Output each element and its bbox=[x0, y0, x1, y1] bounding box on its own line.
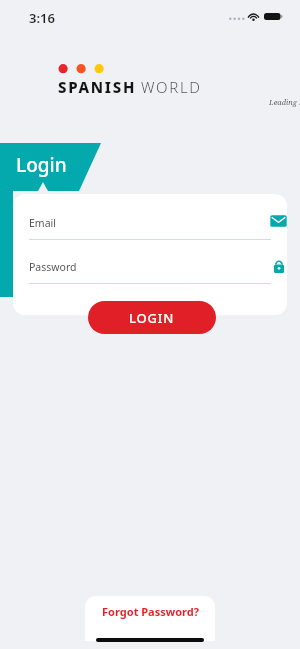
staticText: Login bbox=[16, 152, 67, 178]
button[interactable]: Password bbox=[13, 255, 287, 289]
button[interactable]: Forgot Password? bbox=[85, 596, 215, 641]
staticText: LOGIN bbox=[129, 309, 175, 327]
staticText: Forgot Password? bbox=[102, 604, 199, 619]
button[interactable]: LOGIN bbox=[88, 301, 216, 334]
staticText: Password bbox=[29, 260, 77, 274]
other: Email bbox=[269, 213, 287, 229]
staticText: 3:16 bbox=[29, 9, 55, 27]
staticText: Leading Language Group bbox=[269, 97, 300, 107]
button[interactable]: Email bbox=[13, 211, 287, 245]
staticText: Email bbox=[29, 216, 56, 230]
staticText: SPANISH bbox=[58, 77, 137, 97]
staticText: WORLD bbox=[141, 77, 202, 97]
other: Password bbox=[272, 257, 286, 275]
